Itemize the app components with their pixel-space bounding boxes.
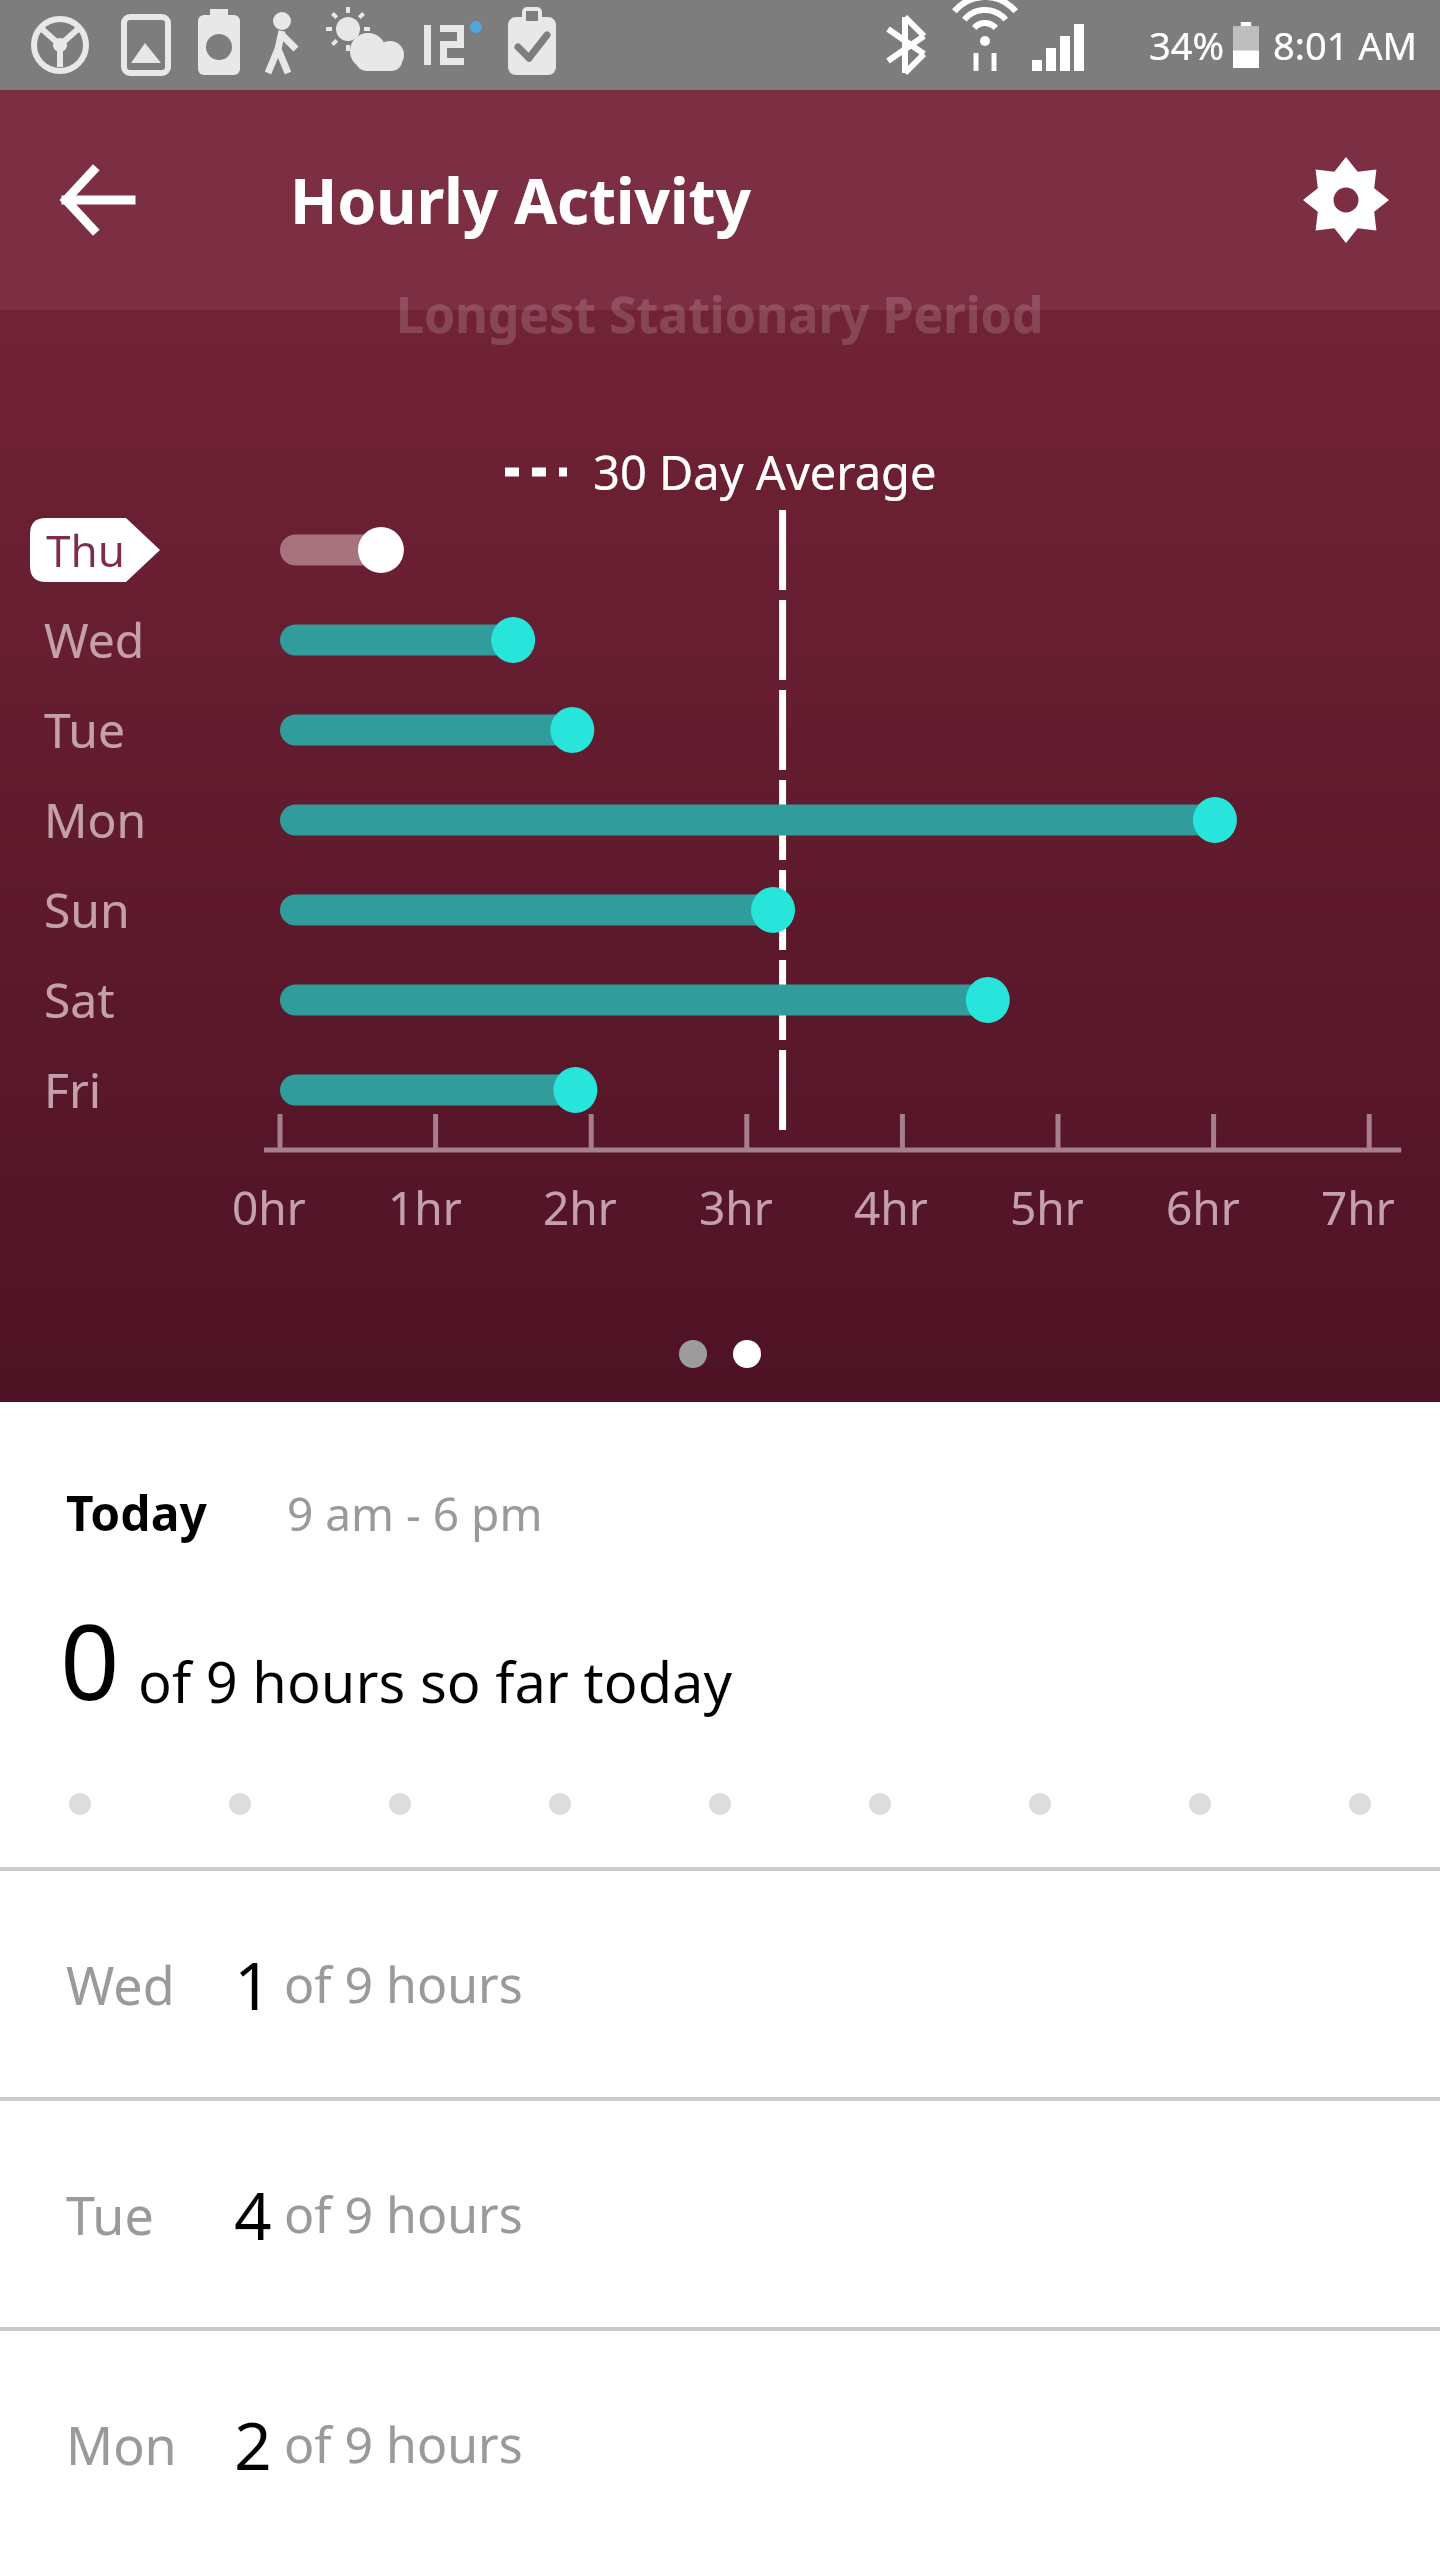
staticText: Tue xyxy=(66,2179,234,2250)
staticText: 4 xyxy=(234,2169,272,2259)
staticText: Wed xyxy=(44,607,145,672)
staticText: Wed xyxy=(66,1949,234,2020)
staticText: 9 am - 6 pm xyxy=(287,1482,543,1545)
staticText: Fri xyxy=(44,1057,102,1122)
staticText: Mon xyxy=(66,2409,234,2480)
staticText: 2 xyxy=(234,2399,272,2489)
staticText: Tue xyxy=(44,697,126,762)
staticText: 6hr xyxy=(1166,1176,1240,1239)
button[interactable]: Mon xyxy=(0,2331,1440,2557)
staticText: 8:01 AM xyxy=(1273,19,1418,71)
staticText: 7hr xyxy=(1321,1176,1395,1239)
staticText: Longest Stationary Period xyxy=(396,280,1044,348)
staticText: 1 xyxy=(234,1939,272,2029)
button[interactable]: Wed xyxy=(0,1871,1440,2097)
staticText: 34% xyxy=(1149,19,1225,71)
staticText: Mon xyxy=(44,787,147,852)
button[interactable]: Today xyxy=(0,1402,1440,1867)
staticText: 1hr xyxy=(388,1176,462,1239)
staticText: of 9 hours so far today xyxy=(138,1643,733,1719)
staticText: Sun xyxy=(44,877,130,942)
staticText: of 9 hours xyxy=(284,2180,523,2248)
button[interactable]: Back xyxy=(36,140,156,260)
staticText: 4hr xyxy=(854,1176,928,1239)
staticText: 2hr xyxy=(543,1176,617,1239)
staticText: Hourly Activity xyxy=(290,158,751,242)
staticText: 30 Day Average xyxy=(593,440,937,504)
staticText: of 9 hours xyxy=(284,2410,523,2478)
staticText: of 9 hours xyxy=(284,1950,523,2018)
button[interactable]: Page 1 xyxy=(679,1340,707,1368)
button[interactable]: Page 2 xyxy=(733,1340,761,1368)
staticText: 3hr xyxy=(699,1176,773,1239)
button[interactable]: Settings xyxy=(1286,140,1406,260)
staticText: Today xyxy=(66,1480,207,1545)
staticText: Sat xyxy=(44,967,115,1032)
button[interactable]: Tue xyxy=(0,2101,1440,2327)
staticText: 0hr xyxy=(232,1176,306,1239)
staticText: 5hr xyxy=(1010,1176,1084,1239)
staticText: Thu xyxy=(46,520,125,580)
staticText: 0 xyxy=(60,1589,120,1731)
